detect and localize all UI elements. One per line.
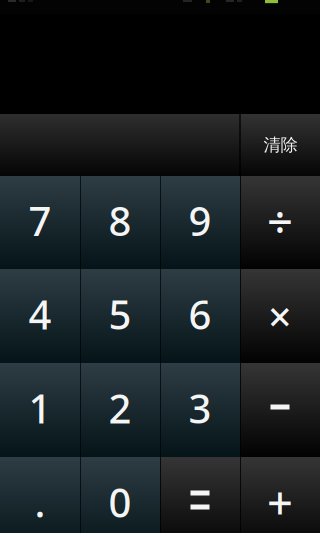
staticText: 3 [188,381,211,434]
button[interactable]: × [240,269,320,363]
staticText: + [267,472,293,532]
staticText: 5 [108,287,131,340]
button[interactable]: 3 [160,363,240,457]
button[interactable]: ÷ [240,176,320,269]
staticText: ÷ [267,190,293,251]
button[interactable]: 8 [80,176,160,269]
staticText: 8 [108,194,131,247]
button[interactable]: 清除 [241,114,320,176]
staticText: 0 [108,475,131,528]
button[interactable]: 5 [80,269,160,363]
button[interactable]: 7 [0,176,80,269]
button[interactable] [240,363,320,457]
staticText: 9 [188,194,211,247]
staticText: 7 [28,194,51,247]
button[interactable] [160,457,240,533]
button[interactable]: + [240,457,320,533]
button[interactable]: 6 [160,269,240,363]
button[interactable]: 9 [160,176,240,269]
button[interactable]: 1 [0,363,80,457]
button[interactable]: . [0,457,80,533]
button[interactable]: 4 [0,269,80,363]
staticText: 6 [188,287,211,340]
staticText: 4 [28,287,51,340]
button[interactable]: 2 [80,363,160,457]
staticText: . [34,475,45,528]
staticText: × [268,289,292,343]
staticText: 清除 [263,134,297,156]
staticText: 2 [108,381,131,434]
staticText: 1 [28,381,51,434]
button[interactable]: 0 [80,457,160,533]
